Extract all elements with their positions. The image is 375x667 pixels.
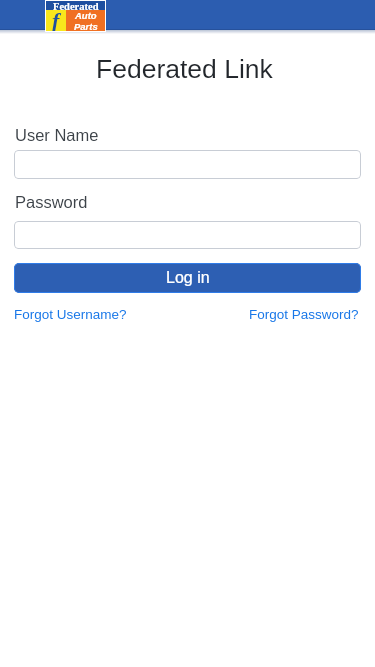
staticText: Forgot Password? (249, 307, 359, 322)
staticText: Federated (53, 1, 99, 10)
staticText: Log in (166, 269, 210, 287)
button[interactable] (14, 150, 361, 179)
staticText: Auto (75, 10, 97, 21)
staticText: Forgot Username? (14, 307, 127, 322)
staticText: f (52, 8, 60, 31)
button[interactable]: Forgot Password? (249, 307, 359, 322)
staticText: Password (15, 193, 88, 211)
staticText: Parts (74, 21, 98, 31)
button[interactable]: Forgot Username? (14, 307, 127, 322)
button[interactable] (14, 221, 361, 249)
staticText: User Name (15, 126, 99, 144)
button[interactable]: Log in (14, 263, 361, 293)
staticText: Federated Link (96, 54, 273, 84)
